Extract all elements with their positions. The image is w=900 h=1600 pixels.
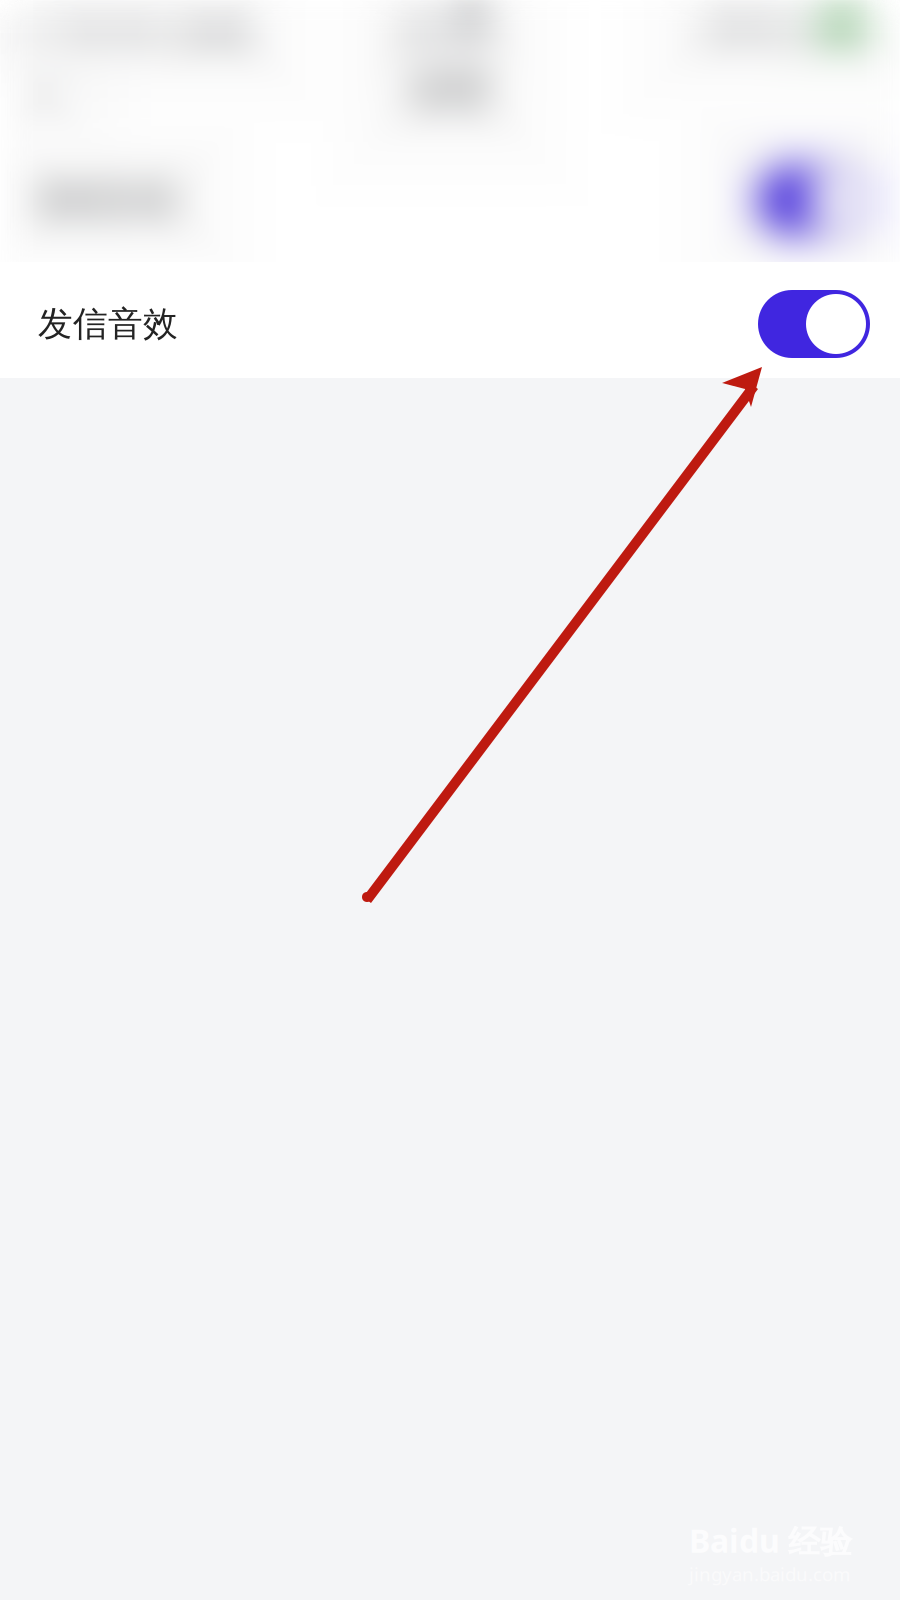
staticText: 86% xyxy=(756,11,811,48)
staticText: 设置 xyxy=(410,65,490,114)
button[interactable] xyxy=(758,290,870,358)
staticText: HD xyxy=(398,13,439,50)
staticText: 接收音效 xyxy=(38,179,178,221)
button[interactable]: 发信音效 xyxy=(0,270,900,378)
staticText: Baidu 经验 xyxy=(689,1519,852,1562)
button[interactable]: 接收音效 xyxy=(0,146,900,254)
staticText: 发信音效 xyxy=(38,303,178,345)
button[interactable] xyxy=(758,166,870,234)
